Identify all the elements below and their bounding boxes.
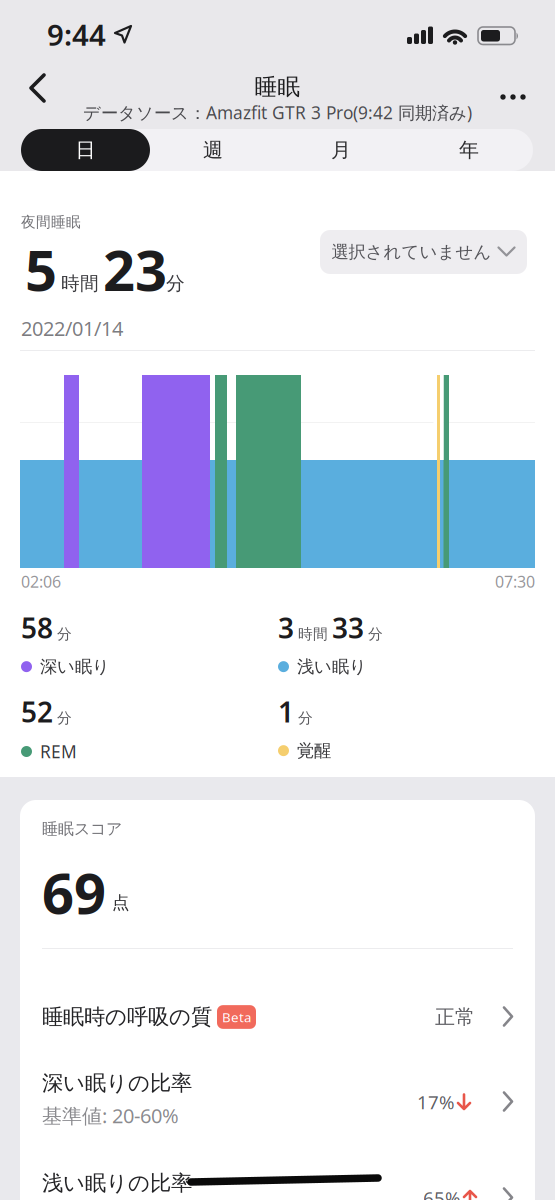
staticText: 点 [112, 892, 129, 913]
staticText: データソース：Amazfit GTR 3 Pro(9:42 同期済み) [83, 101, 472, 124]
staticText: 週 [203, 138, 223, 162]
staticText: 分 [368, 625, 383, 643]
staticText: 睡眠時の呼吸の質 [42, 1004, 212, 1030]
staticText: 浅い眠り [297, 656, 367, 677]
button[interactable]: 深い眠りの比率 [20, 1062, 535, 1142]
staticText: 時間 [61, 272, 99, 295]
staticText: 分 [298, 709, 313, 727]
button[interactable]: 年 [405, 129, 533, 171]
staticText: 33 [332, 609, 364, 646]
staticText: 52 [21, 693, 53, 730]
button[interactable]: 月 [277, 129, 405, 171]
staticText: 深い眠りの比率 [42, 1070, 192, 1096]
staticText: 9:44 [47, 15, 106, 54]
button[interactable]: 睡眠時の呼吸の質 [20, 985, 535, 1049]
staticText: 07:30 [495, 571, 535, 592]
staticText: 正常 [435, 1005, 475, 1029]
staticText: 02:06 [21, 571, 61, 592]
button[interactable]: 浅い眠りの比率 [20, 1160, 535, 1200]
button[interactable]: 選択されていません [320, 230, 527, 274]
button[interactable]: Back [18, 66, 62, 110]
staticText: 分 [166, 272, 185, 295]
staticText: 2022/01/14 [21, 315, 123, 342]
staticText: 65% [423, 1186, 461, 1200]
staticText: 58 [21, 609, 53, 646]
staticText: 浅い眠りの比率 [42, 1170, 192, 1196]
staticText: 69 [42, 855, 106, 929]
staticText: 睡眠 [254, 73, 300, 101]
staticText: 基準値: 20-60% [42, 1102, 179, 1129]
staticText: 夜間睡眠 [21, 213, 81, 231]
staticText: 5 [25, 232, 57, 306]
staticText: 1 [278, 693, 294, 730]
staticText: 深い眠り [40, 656, 110, 677]
staticText: 23 [103, 232, 167, 306]
button[interactable]: 週 [149, 129, 277, 171]
staticText: 睡眠スコア [42, 819, 122, 839]
staticText: 覚醒 [297, 740, 331, 761]
staticText: 日 [75, 138, 95, 162]
staticText: 年 [459, 138, 479, 162]
staticText: REM [40, 740, 77, 763]
staticText: 時間 [298, 625, 328, 643]
staticText: 分 [57, 625, 72, 643]
staticText: Beta [222, 1008, 251, 1026]
button[interactable]: 日 [21, 129, 150, 171]
button[interactable]: More [495, 82, 539, 112]
staticText: 分 [57, 709, 72, 727]
staticText: 月 [331, 138, 351, 162]
staticText: 17% [417, 1090, 455, 1114]
staticText: 選択されていません [331, 241, 491, 263]
staticText: 3 [278, 609, 294, 646]
